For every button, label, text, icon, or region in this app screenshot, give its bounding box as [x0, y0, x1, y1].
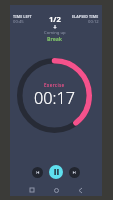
button[interactable]: Next: [69, 167, 80, 178]
button[interactable]: Recents: [26, 184, 38, 196]
staticText: Exercise: [44, 82, 65, 88]
staticText: 00:17: [34, 87, 75, 109]
staticText: ELAPSED TIME: [72, 14, 99, 19]
staticText: TIME LEFT: [13, 14, 32, 19]
staticText: Break: [47, 35, 63, 42]
button[interactable]: Back: [74, 184, 86, 196]
staticText: Coming up: [44, 30, 66, 36]
button[interactable]: Pause: [49, 165, 63, 179]
staticText: 1/2: [49, 14, 61, 24]
staticText: 00:12: [88, 19, 99, 25]
button[interactable]: Home: [50, 184, 62, 196]
button[interactable]: Previous: [32, 167, 43, 178]
staticText: 00:45: [13, 19, 24, 25]
